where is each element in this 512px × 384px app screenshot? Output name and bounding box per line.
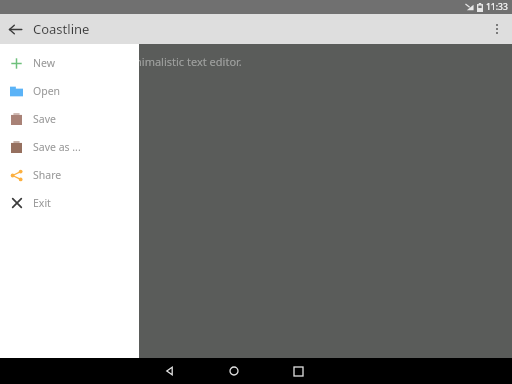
button[interactable]: Exit: [0, 189, 139, 217]
staticText: Save as ...: [33, 140, 81, 154]
button[interactable]: Share: [0, 161, 139, 189]
staticText: Coastline: [33, 20, 90, 38]
staticText: Share: [33, 168, 62, 182]
staticText: Save: [33, 112, 56, 126]
button[interactable]: More options: [482, 14, 512, 44]
button[interactable]: Save as ...: [0, 133, 139, 161]
button[interactable]: Back: [0, 14, 30, 44]
staticText: Exit: [33, 196, 51, 210]
button[interactable]: Back: [150, 358, 190, 384]
button[interactable]: Recent apps: [278, 358, 318, 384]
button[interactable]: New: [0, 49, 139, 77]
staticText: New: [33, 56, 55, 70]
button[interactable]: Open: [0, 77, 139, 105]
staticText: A minimalistic text editor.: [112, 54, 242, 69]
staticText: 11:33: [486, 1, 508, 13]
button[interactable]: Save: [0, 105, 139, 133]
staticText: Open: [33, 84, 61, 98]
button[interactable]: Home: [214, 358, 254, 384]
